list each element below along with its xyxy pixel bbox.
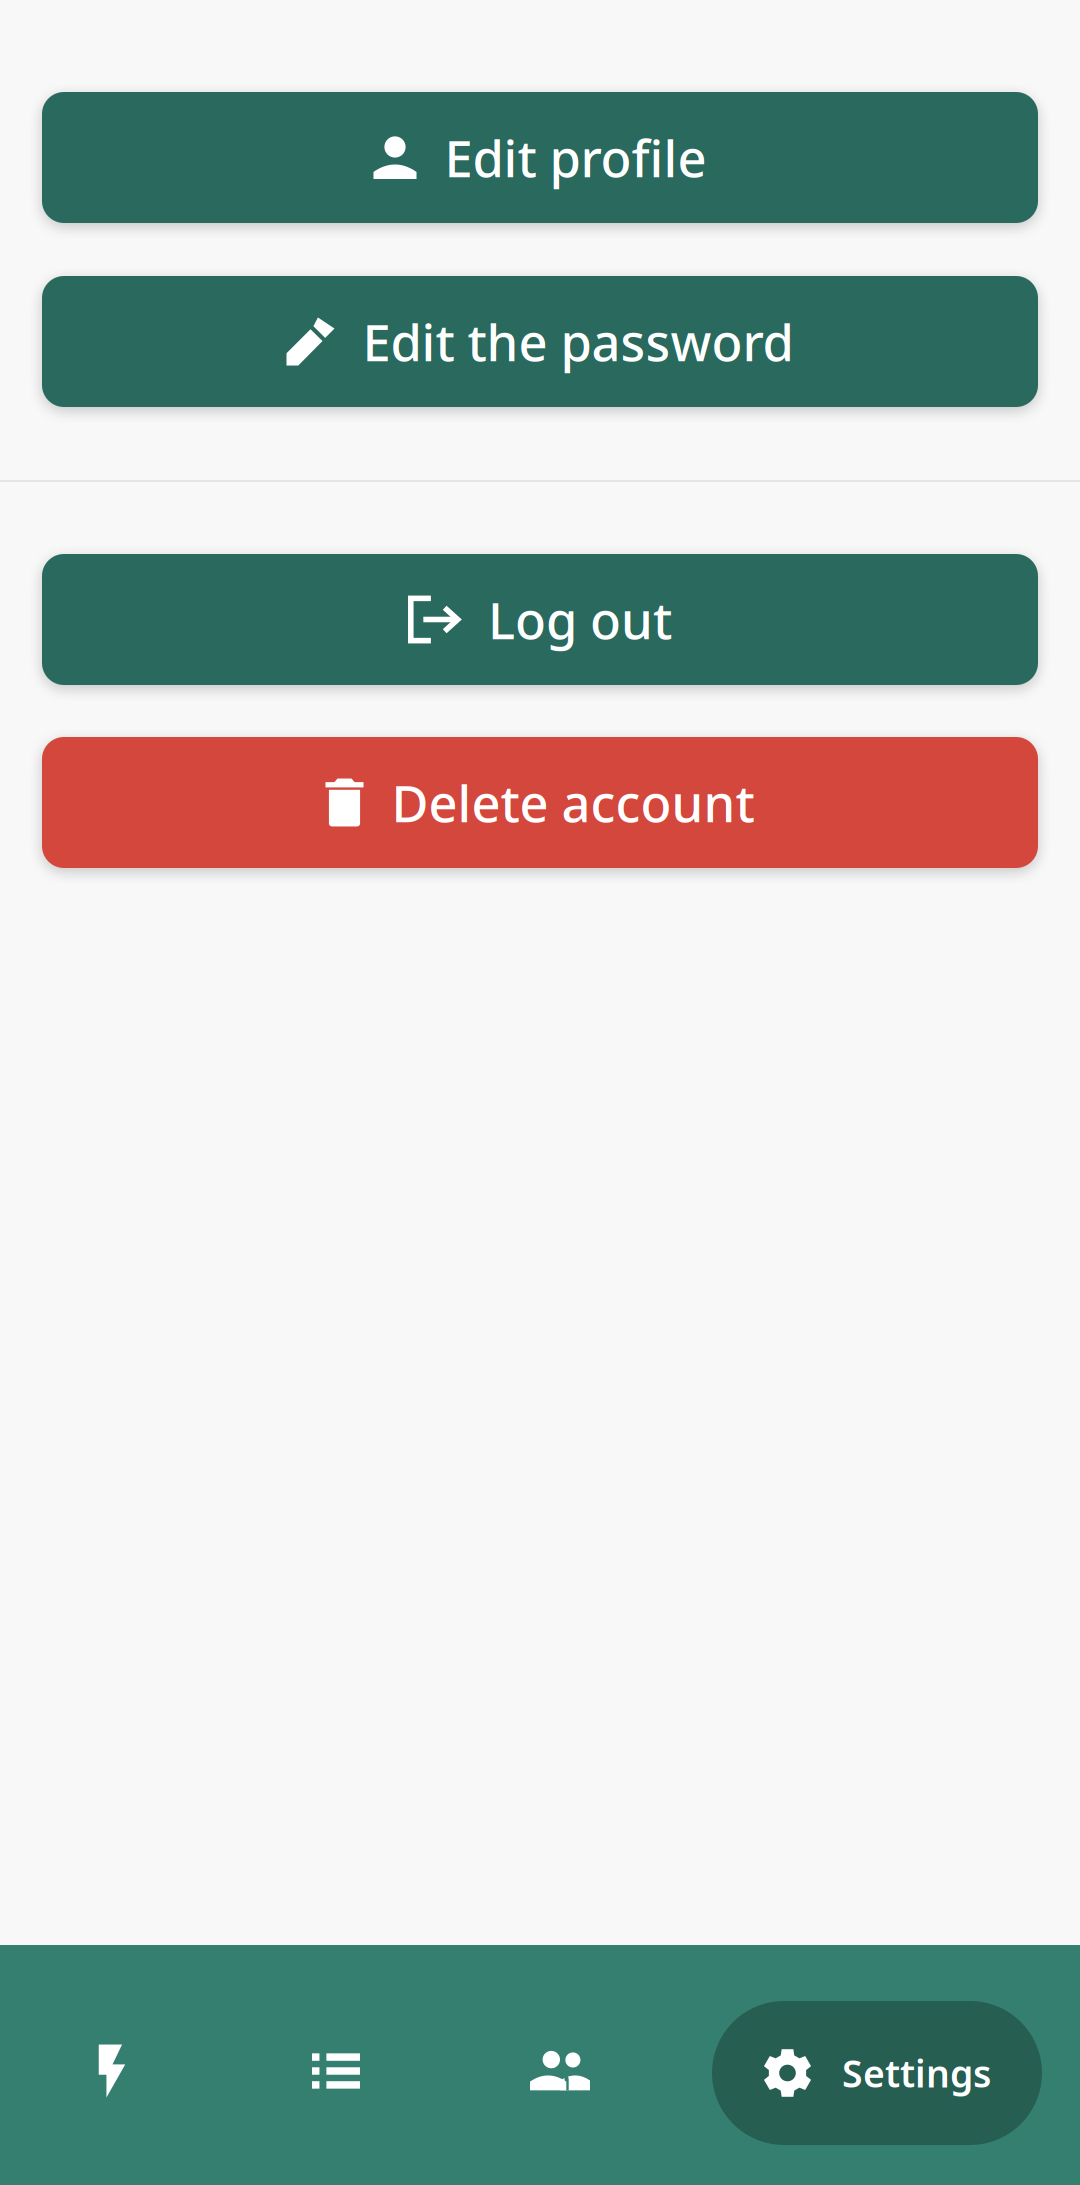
staticText: Log out xyxy=(488,586,672,653)
button[interactable]: Edit the password xyxy=(42,276,1038,407)
button[interactable]: Activity xyxy=(0,1945,224,2185)
button[interactable]: Log out xyxy=(42,554,1038,685)
button[interactable]: Tasks xyxy=(224,1945,448,2185)
button[interactable]: Delete account xyxy=(42,737,1038,868)
staticText: Edit profile xyxy=(444,124,706,191)
staticText: Edit the password xyxy=(362,308,793,375)
staticText: Settings xyxy=(842,2048,991,2098)
button[interactable]: Edit profile xyxy=(42,92,1038,223)
staticText: Delete account xyxy=(391,769,754,836)
button[interactable]: Settings xyxy=(712,1993,1042,2137)
button[interactable]: People xyxy=(448,1945,672,2185)
